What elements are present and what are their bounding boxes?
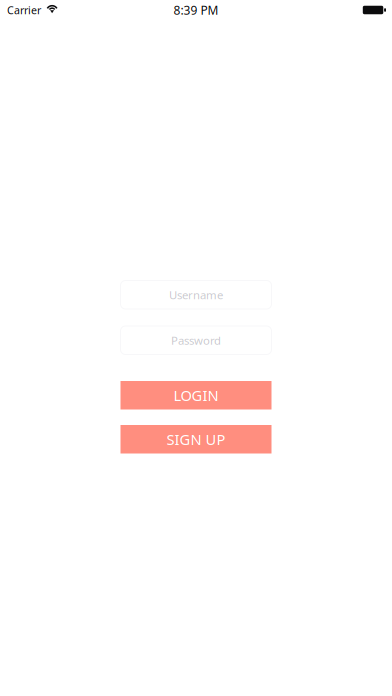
button[interactable]: SIGN UP (120, 425, 271, 453)
button[interactable]: Username (120, 280, 271, 309)
staticText: LOGIN (173, 385, 218, 405)
staticText: SIGN UP (166, 429, 225, 449)
button[interactable]: LOGIN (120, 381, 271, 409)
staticText: 8:39 PM (173, 2, 218, 18)
button[interactable]: Password (120, 326, 271, 354)
staticText: Username (169, 287, 223, 302)
staticText: Password (171, 332, 221, 348)
staticText: Carrier (7, 3, 41, 17)
